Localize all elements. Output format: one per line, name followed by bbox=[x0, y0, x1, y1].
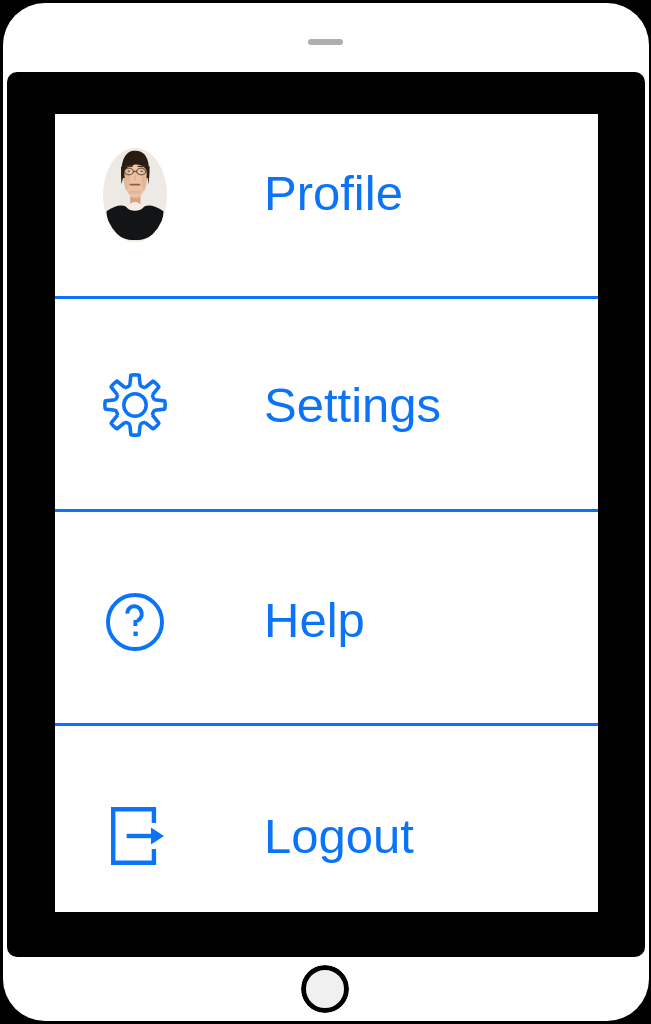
staticText: Profile bbox=[264, 166, 403, 221]
staticText: Settings bbox=[264, 378, 442, 433]
staticText: Help bbox=[264, 593, 365, 648]
staticText: Logout bbox=[264, 809, 414, 864]
button[interactable]: Profile bbox=[55, 114, 598, 298]
button[interactable]: Home bbox=[301, 965, 349, 1013]
button[interactable]: Logout bbox=[55, 725, 598, 912]
button[interactable]: Settings bbox=[55, 298, 598, 511]
button[interactable]: Help bbox=[55, 511, 598, 725]
